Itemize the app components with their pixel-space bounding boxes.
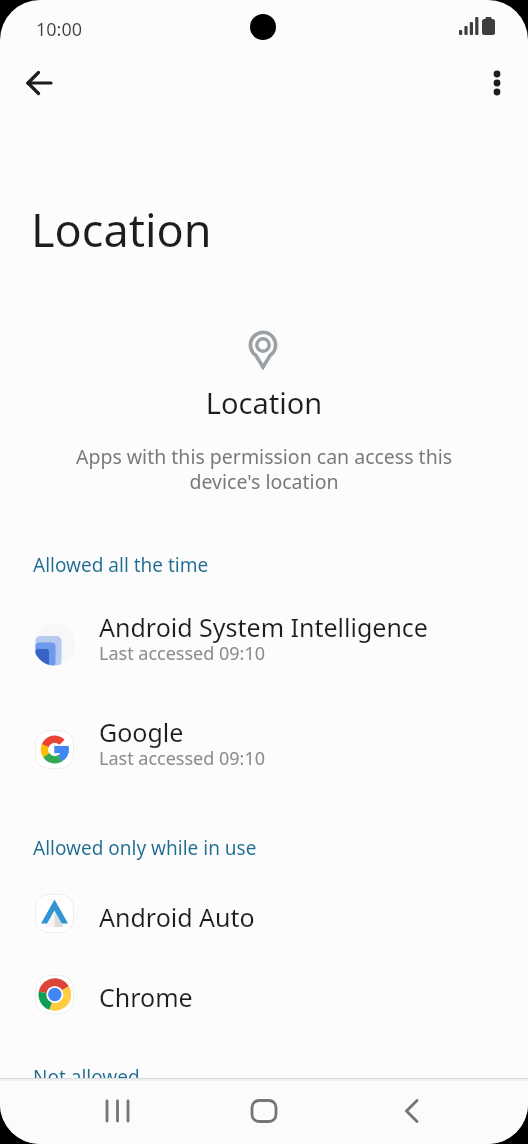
- staticText: Last accessed 09:10: [99, 746, 266, 771]
- staticText: Google: [99, 715, 184, 749]
- staticText: Android System Intelligence: [99, 610, 428, 644]
- staticText: Android Auto: [99, 900, 255, 934]
- staticText: Location: [31, 199, 212, 260]
- button[interactable]: [387, 1086, 437, 1136]
- staticText: Allowed only while in use: [33, 835, 257, 861]
- button[interactable]: Android System Intelligence: [0, 597, 528, 693]
- button[interactable]: Android Auto: [0, 874, 528, 954]
- staticText: Apps with this permission can access thi…: [0, 443, 528, 495]
- button[interactable]: [475, 61, 519, 105]
- staticText: 10:00: [36, 17, 83, 42]
- button[interactable]: [92, 1086, 142, 1136]
- staticText: Last accessed 09:10: [99, 641, 266, 666]
- button[interactable]: Chrome: [0, 954, 528, 1034]
- button[interactable]: [17, 61, 61, 105]
- button[interactable]: Google: [0, 702, 528, 798]
- staticText: Not allowed: [33, 1064, 140, 1090]
- staticText: Chrome: [99, 980, 193, 1014]
- button[interactable]: [239, 1086, 289, 1136]
- staticText: Location: [0, 383, 528, 422]
- staticText: Allowed all the time: [33, 552, 209, 578]
